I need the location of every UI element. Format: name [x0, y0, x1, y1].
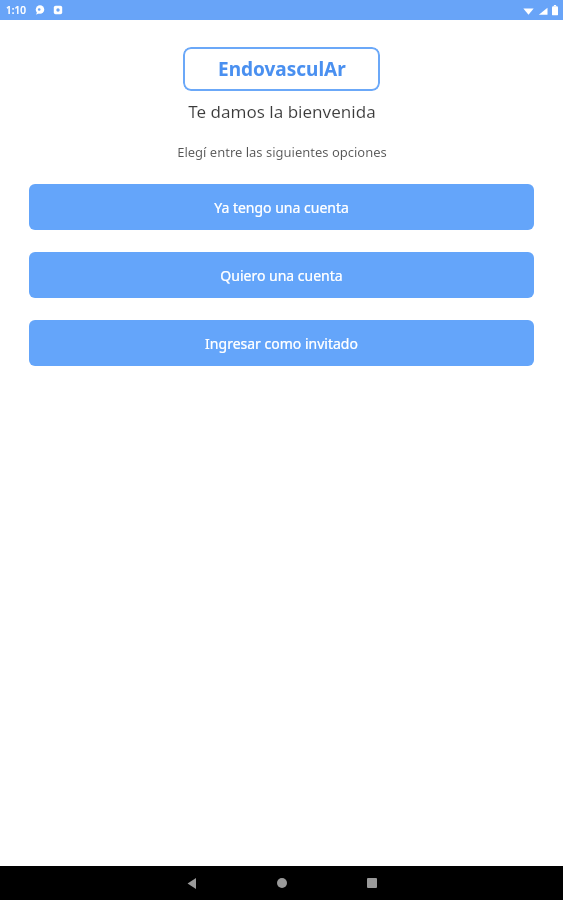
button[interactable]: EndovasculAr — [183, 47, 380, 91]
button[interactable]: Recent apps — [327, 866, 417, 900]
button[interactable]: Back — [147, 866, 237, 900]
button[interactable]: Home — [237, 866, 327, 900]
button[interactable]: Quiero una cuenta — [29, 252, 534, 298]
staticText: EndovasculAr — [218, 56, 346, 82]
staticText: Quiero una cuenta — [220, 266, 343, 285]
staticText: 1:10 — [6, 3, 26, 17]
staticText: Ya tengo una cuenta — [214, 198, 349, 217]
button[interactable]: Ya tengo una cuenta — [29, 184, 534, 230]
staticText: Elegí entre las siguientes opciones — [177, 143, 387, 161]
staticText: Ingresar como invitado — [205, 334, 358, 353]
staticText: Te damos la bienvenida — [188, 100, 376, 123]
button[interactable]: Ingresar como invitado — [29, 320, 534, 366]
